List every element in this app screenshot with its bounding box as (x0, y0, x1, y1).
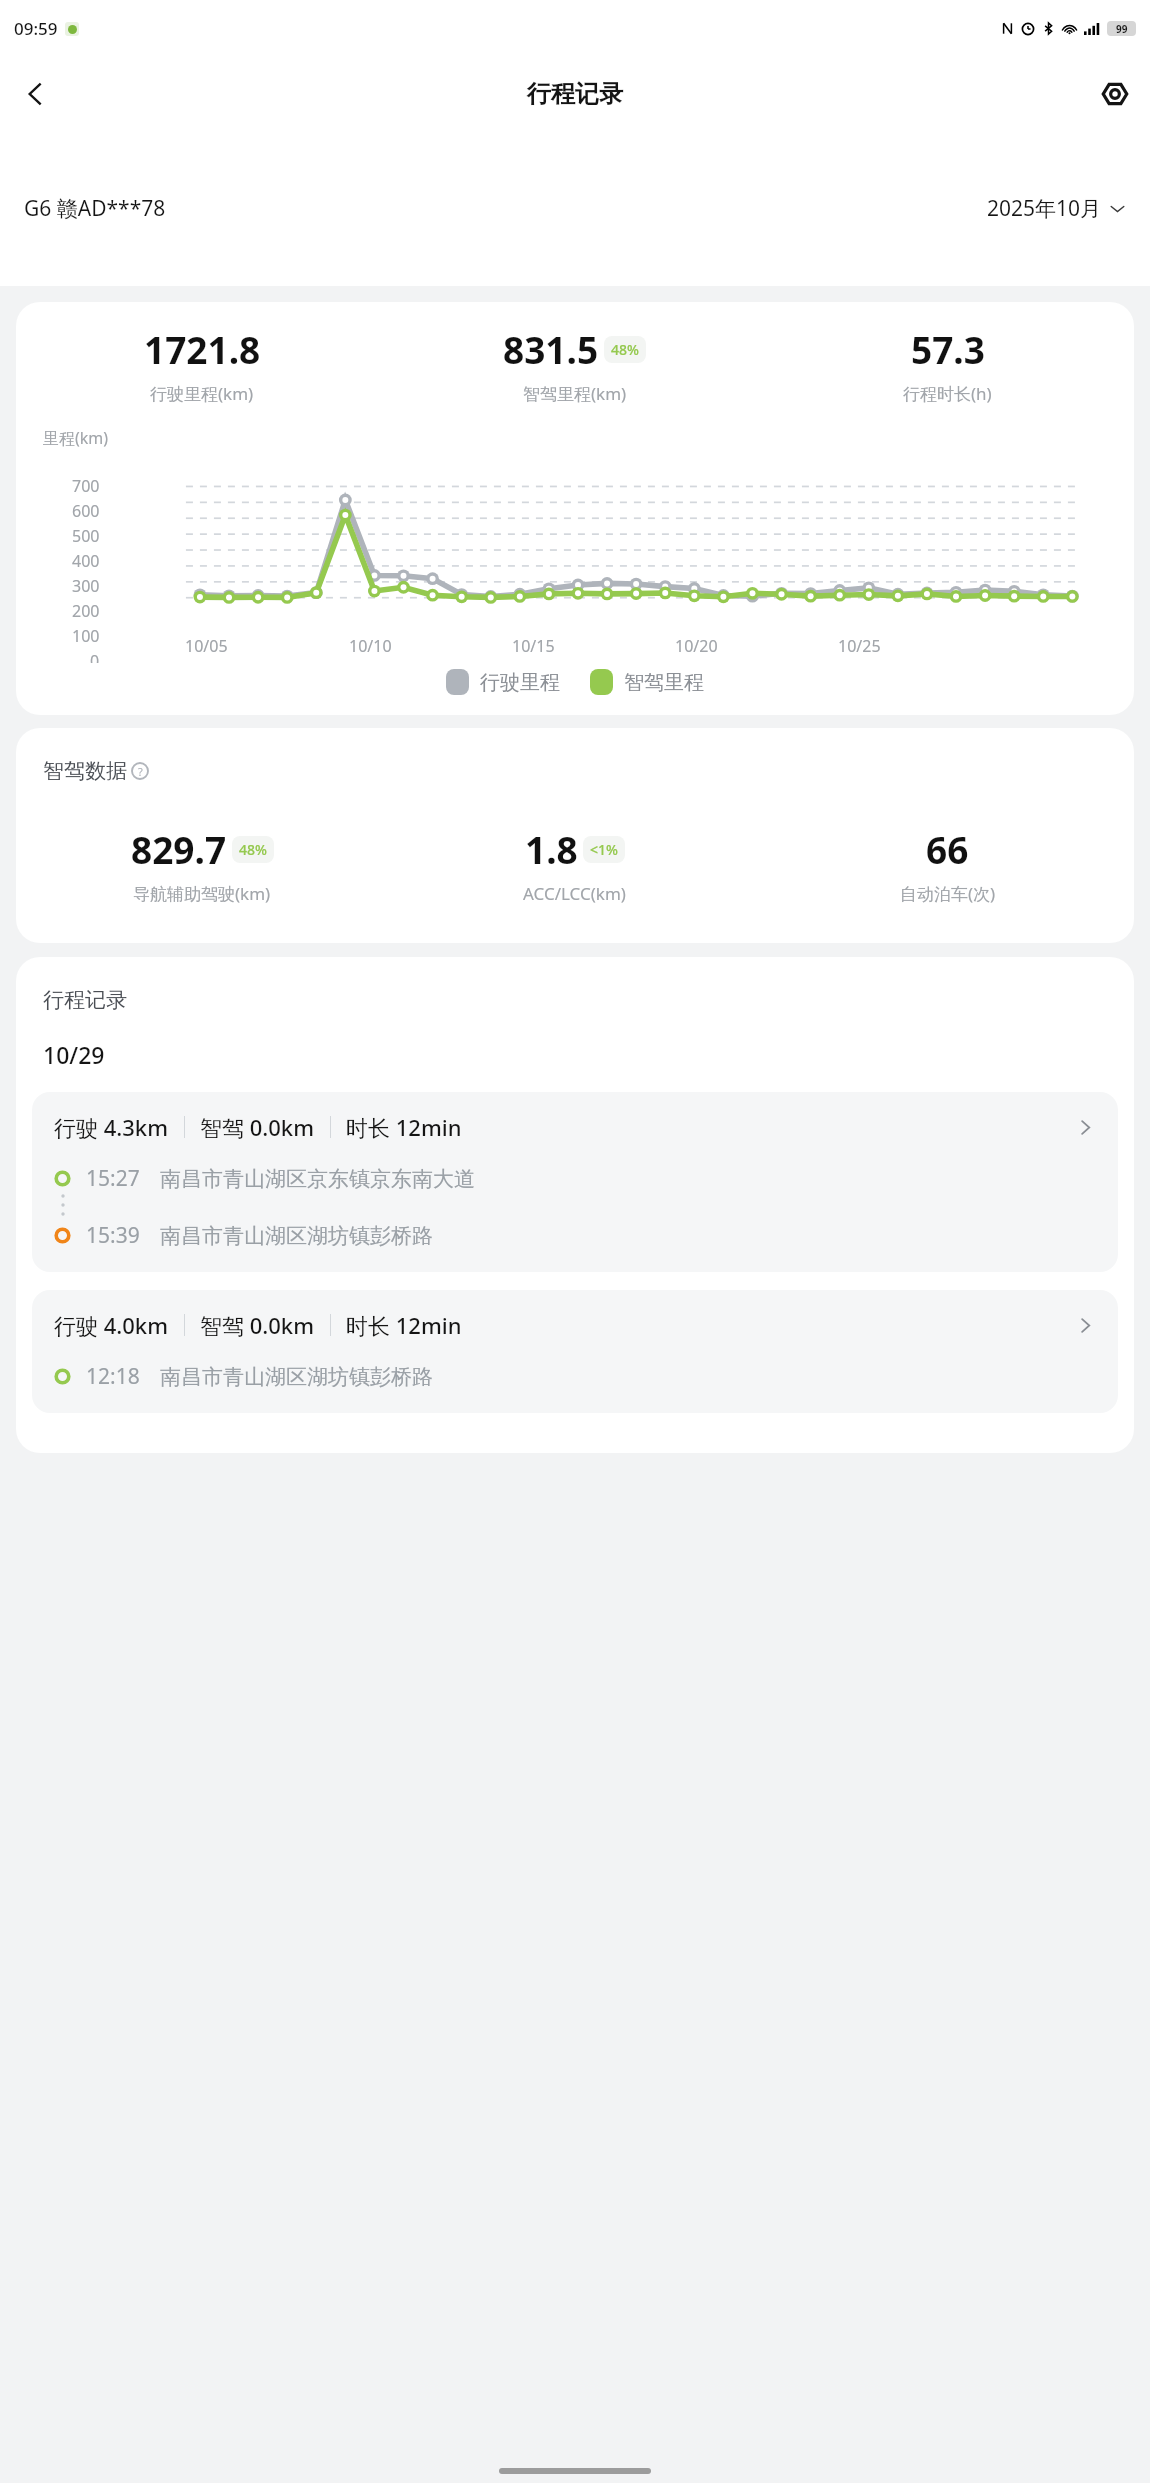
staticText: 时长 12min (346, 1112, 462, 1142)
staticText: 南昌市青山湖区湖坊镇彭桥路 (160, 1223, 433, 1249)
staticText: 智驾 0.0km (200, 1112, 315, 1142)
staticText: 57.3 (911, 324, 985, 374)
staticText: 智驾里程 (624, 670, 704, 695)
staticText: 南昌市青山湖区京东镇京东南大道 (160, 1166, 475, 1192)
button[interactable]: Settings (1092, 71, 1138, 117)
staticText: 0 (90, 650, 100, 663)
staticText: 15:27 (86, 1164, 140, 1193)
button[interactable]: 2025年10月 (987, 188, 1126, 229)
staticText: 导航辅助驾驶(km) (133, 882, 271, 905)
staticText: 行驶 4.3km (54, 1112, 169, 1142)
staticText: 行驶 4.0km (54, 1310, 169, 1340)
button[interactable]: 智驾数据 (43, 758, 150, 784)
staticText: 66 (926, 824, 969, 874)
staticText: 自动泊车(次) (900, 882, 996, 905)
staticText: 400 (72, 550, 100, 570)
staticText: 1.8 (525, 824, 578, 874)
staticText: 2025年10月 (987, 194, 1102, 223)
staticText: 行程记录 (527, 79, 623, 109)
staticText: 500 (72, 525, 100, 545)
staticText: 200 (72, 600, 100, 620)
button[interactable]: Back (12, 71, 58, 117)
staticText: 300 (72, 575, 100, 595)
staticText: 10/10 (349, 635, 392, 657)
staticText: 48% (239, 840, 267, 859)
staticText: 行程记录 (43, 987, 127, 1013)
staticText: 10/15 (512, 635, 555, 657)
staticText: 里程(km) (43, 427, 109, 449)
staticText: 行驶里程 (480, 670, 560, 695)
staticText: 15:39 (86, 1221, 140, 1250)
staticText: 829.7 (131, 824, 227, 874)
staticText: 10/05 (185, 635, 228, 657)
staticText: 99 (1116, 22, 1128, 36)
button[interactable]: 行驶 4.3km (32, 1092, 1118, 1272)
staticText: 10/29 (43, 1039, 105, 1070)
staticText: 智驾里程(km) (523, 382, 627, 405)
staticText: 100 (72, 625, 100, 645)
staticText: 智驾 0.0km (200, 1310, 315, 1340)
staticText: 1721.8 (144, 324, 261, 374)
staticText: 智驾数据 (43, 758, 127, 784)
staticText: 09:59 (14, 17, 58, 40)
staticText: 南昌市青山湖区湖坊镇彭桥路 (160, 1364, 433, 1390)
staticText: 10/25 (838, 635, 881, 657)
staticText: 10/20 (675, 635, 718, 657)
staticText: ? (138, 764, 143, 779)
staticText: ACC/LCC(km) (523, 882, 626, 905)
staticText: 12:18 (86, 1362, 140, 1391)
staticText: G6 赣AD***78 (24, 194, 166, 223)
button[interactable]: 行驶 4.0km (32, 1290, 1118, 1413)
staticText: 48% (611, 340, 639, 359)
staticText: 时长 12min (346, 1310, 462, 1340)
staticText: 行驶里程(km) (150, 382, 254, 405)
staticText: 行程时长(h) (903, 382, 992, 405)
staticText: 600 (72, 500, 100, 520)
staticText: 700 (72, 475, 100, 495)
staticText: <1% (590, 840, 618, 859)
staticText: 831.5 (503, 324, 599, 374)
